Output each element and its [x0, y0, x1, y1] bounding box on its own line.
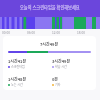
button[interactable]: 7시간49분	[3, 36, 96, 90]
staticText: 기타	[55, 83, 61, 87]
staticText: 06:00	[27, 30, 35, 35]
staticText: 오늘의 스크린타임을 확인해보세요	[20, 4, 80, 10]
staticText: 00:00	[2, 30, 10, 35]
staticText: 스크린타임	[11, 65, 25, 69]
staticText: 18:00	[77, 30, 85, 35]
staticText: 노는 시간	[11, 83, 23, 87]
staticText: 1시간48분	[8, 76, 27, 82]
staticText: 0분	[52, 76, 59, 82]
staticText: 1시간41분	[8, 58, 27, 64]
staticText: 12:00	[52, 30, 60, 35]
staticText: 3시간49분	[52, 58, 71, 64]
staticText: 7시간49분	[40, 41, 59, 47]
staticText: 학습 시간	[55, 65, 67, 69]
